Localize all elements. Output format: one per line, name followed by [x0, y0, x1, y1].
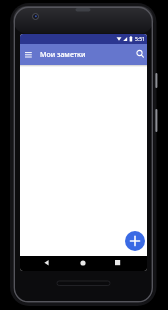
button[interactable]	[110, 256, 125, 271]
staticText: Мои заметки	[40, 50, 86, 60]
staticText: 5:51	[135, 36, 145, 43]
button[interactable]	[20, 44, 37, 65]
button[interactable]	[125, 231, 145, 251]
button[interactable]	[75, 256, 90, 271]
button[interactable]	[132, 44, 147, 65]
button[interactable]	[39, 256, 54, 271]
